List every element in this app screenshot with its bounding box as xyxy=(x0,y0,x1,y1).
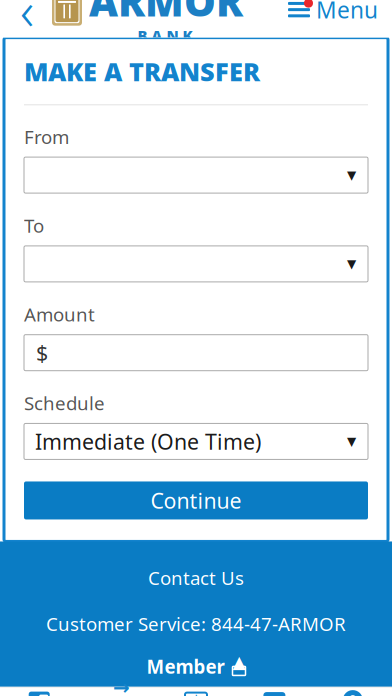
button[interactable]: Immediate (One Time) xyxy=(24,423,368,459)
staticText: Schedule xyxy=(24,391,105,415)
button[interactable]: Customer Service: 844-47-ARMOR xyxy=(46,607,346,640)
staticText: Menu xyxy=(316,0,378,25)
staticText: → xyxy=(113,676,130,696)
staticText: Customer Service: 844-47-ARMOR xyxy=(46,611,346,636)
button[interactable]: Accounts xyxy=(0,684,78,696)
button[interactable]: Menu xyxy=(281,0,382,31)
staticText: Contact Us xyxy=(148,565,244,590)
staticText: MAKE A TRANSFER xyxy=(24,55,260,88)
staticText: ARMOR xyxy=(89,0,243,27)
button[interactable]: → xyxy=(78,684,157,696)
button[interactable]: Contact Us xyxy=(148,561,244,594)
staticText: To xyxy=(24,213,44,238)
staticText: ▼ xyxy=(347,435,356,448)
button[interactable]: Back xyxy=(10,0,44,30)
staticText: ‹ xyxy=(20,0,34,45)
staticText: Continue xyxy=(150,486,241,515)
button[interactable]: ▼ xyxy=(24,157,368,193)
staticText: From xyxy=(24,124,69,149)
staticText: Amount xyxy=(24,302,95,327)
staticText: ▼ xyxy=(347,168,356,182)
button[interactable]: Profile xyxy=(314,684,392,696)
staticText: Immediate (One Time) xyxy=(35,427,261,456)
staticText: ▲ xyxy=(232,652,245,672)
staticText: B A N K xyxy=(137,25,192,45)
button[interactable]: $ xyxy=(24,335,368,371)
staticText: $ xyxy=(192,690,200,696)
button[interactable]: ▼ xyxy=(24,246,368,282)
button[interactable]: Continue xyxy=(24,481,368,519)
staticText: $ xyxy=(36,338,48,367)
button[interactable]: Deposits xyxy=(235,684,314,696)
staticText: ▼ xyxy=(347,257,356,271)
button[interactable]: $ xyxy=(157,684,235,696)
staticText: Member xyxy=(146,654,224,679)
